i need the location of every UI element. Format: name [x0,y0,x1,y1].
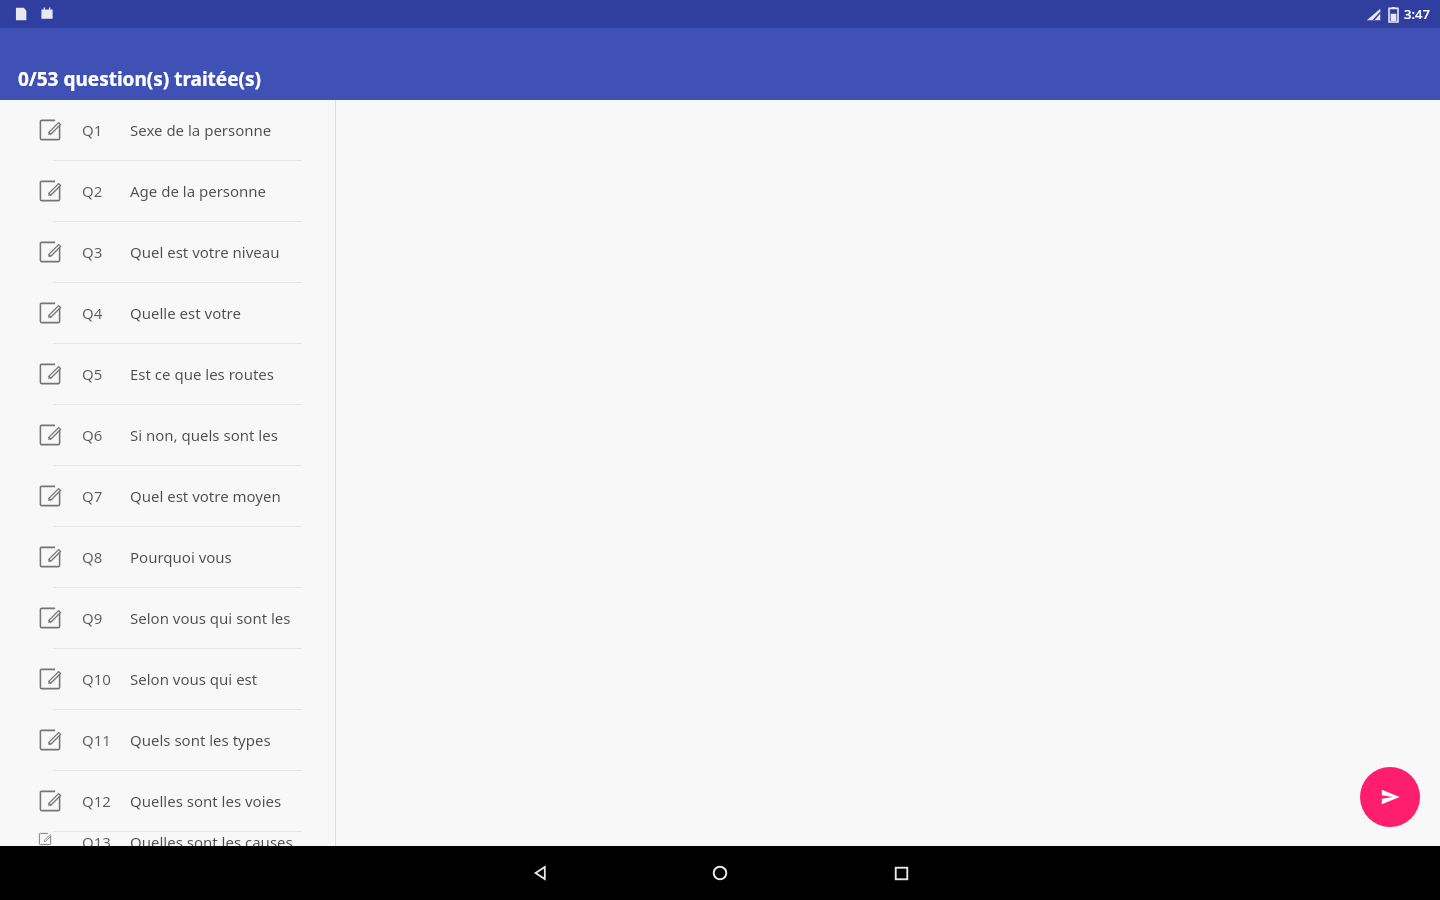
button[interactable]: Q5 [0,344,335,405]
staticText: Q2 [82,181,103,201]
button[interactable]: Q2 [0,161,335,222]
staticText: Quelles sont les causes [130,832,293,846]
staticText: Q1 [82,120,103,140]
staticText: Si non, quels sont les [130,425,278,445]
button[interactable]: Q10 [0,649,335,710]
button[interactable]: Q12 [0,771,335,832]
button[interactable]: Q8 [0,527,335,588]
staticText: Sexe de la personne [130,120,272,140]
staticText: Quelles sont les voies [130,791,282,811]
staticText: 0/53 question(s) traitée(s) [18,66,261,92]
button[interactable]: Recent apps [877,849,925,897]
staticText: Quelle est votre [130,303,241,323]
staticText: Quels sont les types [130,730,271,750]
staticText: Quel est votre niveau [130,242,280,262]
staticText: Pourquoi vous [130,547,232,567]
staticText: Selon vous qui sont les [130,608,291,628]
staticText: 3:47 [1404,5,1430,23]
button[interactable]: Q13 [0,832,335,846]
staticText: Q12 [82,791,111,811]
staticText: Q7 [82,486,103,506]
button[interactable]: Send [1360,767,1420,827]
button[interactable]: Q7 [0,466,335,527]
staticText: Q4 [82,303,103,323]
staticText: Q5 [82,364,103,384]
staticText: Q3 [82,242,103,262]
staticText: Q11 [82,730,111,750]
staticText: Est ce que les routes [130,364,274,384]
staticText: Q6 [82,425,103,445]
button[interactable]: Back [516,849,564,897]
staticText: Q13 [82,832,111,846]
staticText: Quel est votre moyen [130,486,281,506]
button[interactable]: Q3 [0,222,335,283]
staticText: Age de la personne [130,181,267,201]
button[interactable]: Q1 [0,100,335,161]
staticText: Q10 [82,669,111,689]
button[interactable]: Home [696,849,744,897]
staticText: Q9 [82,608,103,628]
button[interactable]: Q6 [0,405,335,466]
button[interactable]: Q11 [0,710,335,771]
staticText: Selon vous qui est [130,669,258,689]
button[interactable]: Q4 [0,283,335,344]
staticText: Q8 [82,547,103,567]
button[interactable]: Q9 [0,588,335,649]
